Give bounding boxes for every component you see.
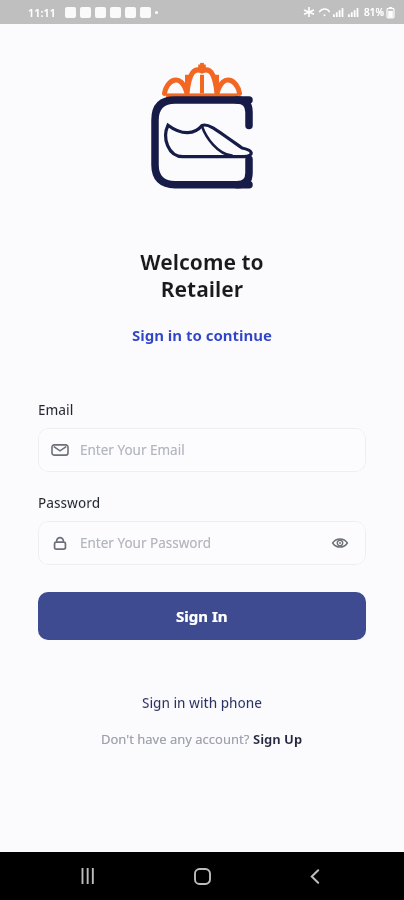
button[interactable]: Recents <box>65 852 113 900</box>
button[interactable]: Don't have any account? <box>91 726 313 752</box>
staticText: Sign in with phone <box>142 694 263 712</box>
button[interactable]: Sign In <box>38 592 366 640</box>
staticText: Sign In <box>176 606 228 626</box>
staticText: Welcome to Retailer <box>0 248 404 303</box>
button[interactable]: Home <box>178 852 226 900</box>
button[interactable]: Enter Your Password <box>38 521 366 565</box>
staticText: 81% <box>364 5 384 19</box>
button[interactable]: Back <box>291 852 339 900</box>
staticText: 11:11 <box>28 5 57 20</box>
staticText: Sign Up <box>253 730 303 748</box>
staticText: Enter Your Email <box>80 441 185 459</box>
button[interactable]: Show password <box>328 531 352 555</box>
staticText: Email <box>38 401 74 419</box>
staticText: Password <box>38 494 101 512</box>
staticText: Enter Your Password <box>80 534 212 552</box>
button[interactable]: Sign in with phone <box>130 690 275 716</box>
button[interactable]: Enter Your Email <box>38 428 366 472</box>
staticText: Sign in to continue <box>0 325 404 345</box>
staticText: Don't have any account? <box>101 730 253 748</box>
